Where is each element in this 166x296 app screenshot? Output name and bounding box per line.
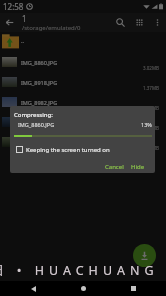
button[interactable]: IMG_8918.JPG (0, 72, 166, 92)
button[interactable]: Recents (126, 281, 140, 296)
staticText: IMG_8983.JPG (21, 119, 58, 126)
staticText: 1.37MB (143, 85, 159, 91)
staticText: Cancel (105, 163, 124, 171)
button[interactable]: Search (111, 13, 130, 32)
staticText: Compressing: (14, 111, 53, 119)
button[interactable]: .. (0, 32, 166, 52)
button[interactable]: Cancel (102, 161, 127, 173)
button[interactable]: Grid view (130, 13, 149, 32)
staticText: .. (21, 37, 25, 45)
button[interactable]: Download (133, 244, 156, 267)
button[interactable]: IMG_8860.JPG (0, 52, 166, 72)
staticText: Hide (131, 163, 145, 171)
staticText: 1 (22, 13, 27, 24)
button[interactable]: Back (0, 13, 19, 32)
staticText: 12:58 (3, 1, 24, 12)
staticText: 3.02MB (143, 65, 159, 71)
staticText: 1.88MB (143, 145, 159, 151)
button[interactable]: Keeping the screen turned on (16, 145, 110, 154)
staticText: 2.15MB (143, 105, 159, 111)
button[interactable]: Hide (128, 161, 148, 173)
staticText: IMG_8918.JPG (21, 79, 58, 86)
staticText: IMG_8860.JPG (18, 121, 55, 128)
button[interactable]: Home (76, 281, 90, 296)
staticText: 2.48MB (143, 125, 159, 131)
button[interactable]: IMG_8982.JPG (0, 92, 166, 112)
staticText: 田 • HUACHUANGZ (0, 262, 157, 279)
staticText: /storage/emulated/0 (22, 24, 81, 32)
button[interactable]: Back (26, 281, 40, 296)
staticText: 13% (141, 121, 152, 128)
button[interactable]: IMG_8983.JPG (0, 112, 166, 132)
button[interactable]: IMG_9001.JPG (0, 132, 166, 152)
staticText: IMG_8982.JPG (21, 99, 58, 106)
staticText: IMG_8860.JPG (21, 59, 58, 66)
staticText: Keeping the screen turned on (26, 146, 110, 154)
button[interactable]: More options (149, 14, 166, 31)
